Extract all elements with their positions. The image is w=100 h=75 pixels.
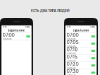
staticText: 07:05 xyxy=(67,40,79,45)
button[interactable]: 07:05 xyxy=(65,40,97,47)
staticText: Будильник xyxy=(67,38,76,40)
staticText: 9:41 xyxy=(67,26,71,28)
staticText: 07:00 xyxy=(3,32,15,38)
staticText: Будильник xyxy=(67,67,76,69)
staticText: Будильник xyxy=(3,38,12,40)
staticText: Будильник xyxy=(67,74,76,75)
staticText: 07:10 xyxy=(67,47,78,52)
staticText: 07:15 xyxy=(67,54,78,60)
button[interactable]: 07:10 xyxy=(65,47,97,55)
staticText: 100% xyxy=(90,26,95,28)
button[interactable]: 07:30 xyxy=(65,69,97,75)
staticText: Будильник xyxy=(67,60,76,62)
button[interactable]: 07:20 xyxy=(65,62,97,69)
staticText: 9:41 xyxy=(3,26,7,28)
staticText: 07:00 xyxy=(67,32,79,38)
staticText: Будильник xyxy=(72,29,89,32)
staticText: Будильник xyxy=(67,52,76,55)
staticText: ЕСТЬ ДВА ТИПА ЛЮДЕЙ xyxy=(31,9,69,13)
staticText: 100% xyxy=(25,26,30,28)
staticText: 07:30 xyxy=(67,69,79,74)
staticText: Будильник xyxy=(8,29,25,32)
button[interactable]: 07:15 xyxy=(65,55,97,62)
staticText: 07:20 xyxy=(67,61,79,67)
button[interactable]: 07:00 xyxy=(1,33,32,40)
staticText: Будильник xyxy=(67,45,76,48)
button[interactable]: 07:00 xyxy=(65,33,97,40)
